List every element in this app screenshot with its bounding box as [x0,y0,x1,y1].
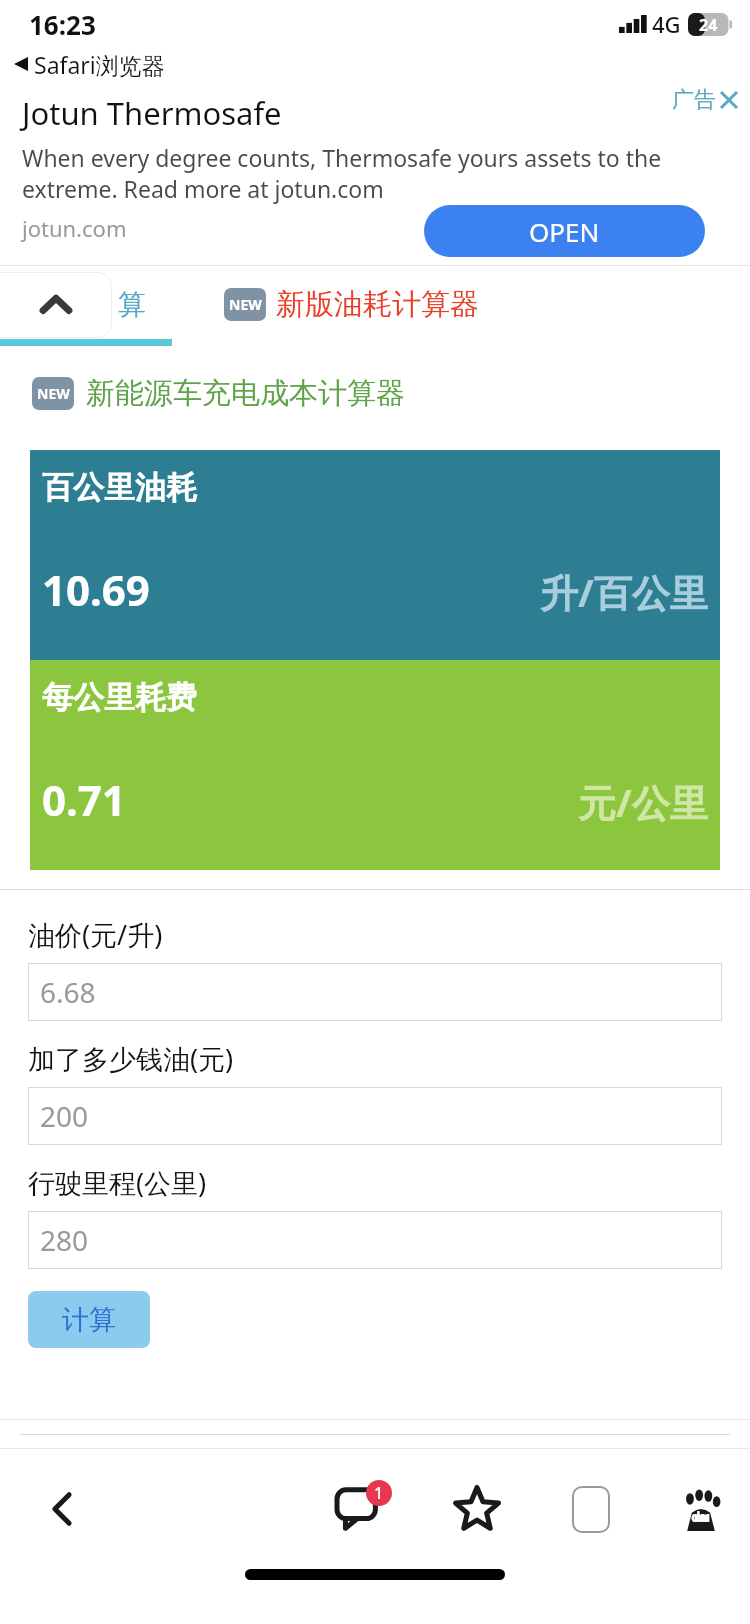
button[interactable]: 200 [28,1087,722,1145]
button[interactable]: NEW [224,286,479,323]
staticText: 升/百公里 [540,566,708,618]
staticText: NEW [37,384,70,403]
staticText: 计算 [62,1303,116,1337]
staticText: NEW [229,295,262,314]
staticText: jotun.com [22,213,127,243]
staticText: 行驶里程(公里) [28,1164,207,1201]
staticText: du [691,1506,711,1526]
button[interactable]: 收藏 [446,1478,508,1540]
staticText: 广告 [672,86,716,114]
staticText: 1 [374,1482,384,1504]
button[interactable]: 百度首页 [670,1478,732,1540]
button[interactable]: 收起 [0,272,112,338]
staticText: 油价(元/升) [28,916,163,953]
staticText: 0.71 [42,771,126,828]
button[interactable]: 计算 [28,1291,150,1348]
staticText: 百公里油耗 [42,468,197,507]
staticText: 200 [40,1097,89,1135]
button[interactable]: Jotun Thermosafe [0,80,750,265]
staticText: 新版油耗计算器 [276,286,479,323]
staticText: Safari浏览器 [34,49,165,80]
staticText: extreme. Read more at jotun.com [22,173,384,204]
button[interactable]: 6.68 [28,963,722,1021]
button[interactable]: 消息 [328,1476,394,1542]
staticText: When every degree counts, Thermosafe you… [22,142,662,173]
button[interactable]: OPEN [424,205,705,257]
button[interactable]: 280 [28,1211,722,1269]
staticText: 算 [118,287,146,322]
staticText: 280 [40,1221,89,1259]
staticText: 加了多少钱油(元) [28,1040,234,1077]
button[interactable]: Safari浏览器 [0,48,750,80]
staticText: OPEN [529,214,600,249]
button[interactable]: NEW [32,375,405,412]
button[interactable]: 关闭广告 [672,86,740,114]
staticText: 24 [699,14,718,36]
staticText: 10.69 [42,561,150,618]
staticText: 新能源车充电成本计算器 [86,375,405,412]
staticText: 4G [652,9,681,39]
staticText: 16:23 [29,7,96,42]
button[interactable]: 窗口 [560,1478,622,1540]
staticText: 元/公里 [578,776,708,828]
button[interactable]: 每公里耗费 [30,660,720,870]
staticText: Jotun Thermosafe [22,92,282,134]
staticText: 6.68 [40,973,96,1011]
button[interactable]: 百公里油耗 [30,450,720,660]
staticText: 每公里耗费 [42,678,197,717]
button[interactable]: 后退 [32,1478,94,1540]
